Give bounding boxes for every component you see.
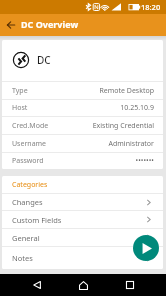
- staticText: Remote Desktop: [99, 86, 154, 96]
- staticText: Administrator: [108, 139, 154, 149]
- button[interactable]: Back: [0, 274, 74, 296]
- button[interactable]: Custom Fields: [2, 211, 163, 228]
- button[interactable]: General: [2, 229, 163, 246]
- button[interactable]: DC: [2, 40, 163, 81]
- staticText: Username: [12, 139, 47, 149]
- button[interactable]: Back: [0, 14, 21, 36]
- staticText: Changes: [12, 197, 43, 207]
- button[interactable]: Home: [74, 274, 93, 296]
- button[interactable]: Changes: [2, 194, 163, 210]
- staticText: Existing Credential: [92, 121, 154, 131]
- staticText: DC Overview: [21, 18, 79, 30]
- staticText: Host: [12, 103, 28, 113]
- button[interactable]: Username: [2, 135, 163, 152]
- button[interactable]: Password: [2, 153, 163, 169]
- staticText: 18:20: [141, 2, 161, 12]
- staticText: Type: [12, 86, 28, 96]
- staticText: Custom Fields: [12, 215, 62, 225]
- button[interactable]: Recents: [93, 274, 166, 296]
- staticText: Categories: [12, 180, 48, 190]
- button[interactable]: Cred.Mode: [2, 117, 163, 134]
- staticText: Cred.Mode: [12, 121, 49, 131]
- staticText: Password: [12, 156, 44, 166]
- button[interactable]: Type: [2, 82, 163, 99]
- staticText: Notes: [12, 253, 33, 263]
- button[interactable]: Connect: [133, 235, 159, 261]
- staticText: 10.25.10.9: [120, 103, 154, 113]
- button[interactable]: Host: [2, 100, 163, 116]
- staticText: •••••••: [135, 156, 154, 166]
- button[interactable]: Notes: [2, 247, 163, 269]
- staticText: DC: [37, 53, 51, 67]
- staticText: General: [12, 233, 40, 243]
